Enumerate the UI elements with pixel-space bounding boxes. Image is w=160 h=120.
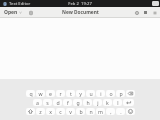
button[interactable]: z	[36, 108, 45, 115]
staticText: Text Editor	[9, 1, 31, 7]
staticText: i	[100, 90, 102, 97]
staticText: n	[89, 108, 93, 115]
button[interactable]: i	[96, 90, 105, 97]
staticText: d	[56, 99, 60, 106]
button[interactable]: a	[33, 99, 42, 106]
button[interactable]: d	[53, 99, 62, 106]
staticText: f	[67, 99, 69, 106]
staticText: s	[46, 99, 49, 106]
staticText: u	[89, 90, 93, 97]
button[interactable]: k	[103, 99, 112, 106]
button[interactable]: Shift	[26, 108, 35, 115]
button[interactable]: Main menu	[151, 9, 158, 16]
button[interactable]: .	[116, 108, 125, 115]
button[interactable]: m	[96, 108, 105, 115]
staticText: k	[106, 99, 109, 106]
staticText: New Document	[62, 9, 99, 16]
staticText: b	[79, 108, 83, 115]
button[interactable]: w	[36, 90, 45, 97]
staticText: y	[79, 90, 82, 97]
button[interactable]: u	[86, 90, 95, 97]
button[interactable]: r	[56, 90, 65, 97]
staticText: w	[38, 90, 43, 97]
button[interactable]: Text Editor	[3, 1, 31, 7]
button[interactable]: q	[26, 90, 35, 97]
button[interactable]: p	[116, 90, 125, 97]
button[interactable]: s	[43, 99, 52, 106]
staticText: g	[76, 99, 80, 106]
button[interactable]: v	[66, 108, 75, 115]
staticText: a	[36, 99, 39, 106]
button[interactable]: Emoji	[126, 108, 135, 115]
button[interactable]: y	[76, 90, 85, 97]
button[interactable]: h	[83, 99, 92, 106]
button[interactable]: b	[76, 108, 85, 115]
button[interactable]: j	[93, 99, 102, 106]
button[interactable]: Settings	[133, 9, 140, 16]
staticText: Open	[4, 9, 18, 16]
staticText: x	[49, 108, 52, 115]
button[interactable]: New document	[27, 9, 34, 16]
button[interactable]: ,	[106, 108, 115, 115]
staticText: o	[109, 90, 113, 97]
staticText: ,	[110, 108, 112, 115]
staticText: t	[70, 90, 72, 97]
staticText: v	[69, 108, 72, 115]
button[interactable]: n	[86, 108, 95, 115]
button[interactable]: l	[113, 99, 122, 106]
staticText: Feb 2 19:27	[68, 1, 92, 7]
button[interactable]: o	[106, 90, 115, 97]
staticText: z	[39, 108, 42, 115]
staticText: q	[29, 90, 33, 97]
button[interactable]: e	[46, 90, 55, 97]
staticText: j	[97, 99, 99, 106]
button[interactable]: c	[56, 108, 65, 115]
staticText: m	[98, 108, 103, 115]
button[interactable]: g	[73, 99, 82, 106]
button[interactable]: System menu	[152, 1, 159, 6]
button[interactable]: Open	[3, 8, 23, 17]
button[interactable]: x	[46, 108, 55, 115]
staticText: e	[49, 90, 52, 97]
button[interactable]: t	[66, 90, 75, 97]
staticText: c	[59, 108, 62, 115]
button[interactable]: f	[63, 99, 72, 106]
button[interactable]: Enter	[123, 99, 134, 106]
staticText: r	[59, 90, 62, 97]
button[interactable]: Backspace	[126, 90, 135, 97]
staticText: l	[117, 99, 119, 106]
staticText: .	[120, 108, 122, 115]
staticText: h	[86, 99, 90, 106]
staticText: p	[119, 90, 123, 97]
button[interactable]: Find	[142, 9, 149, 16]
